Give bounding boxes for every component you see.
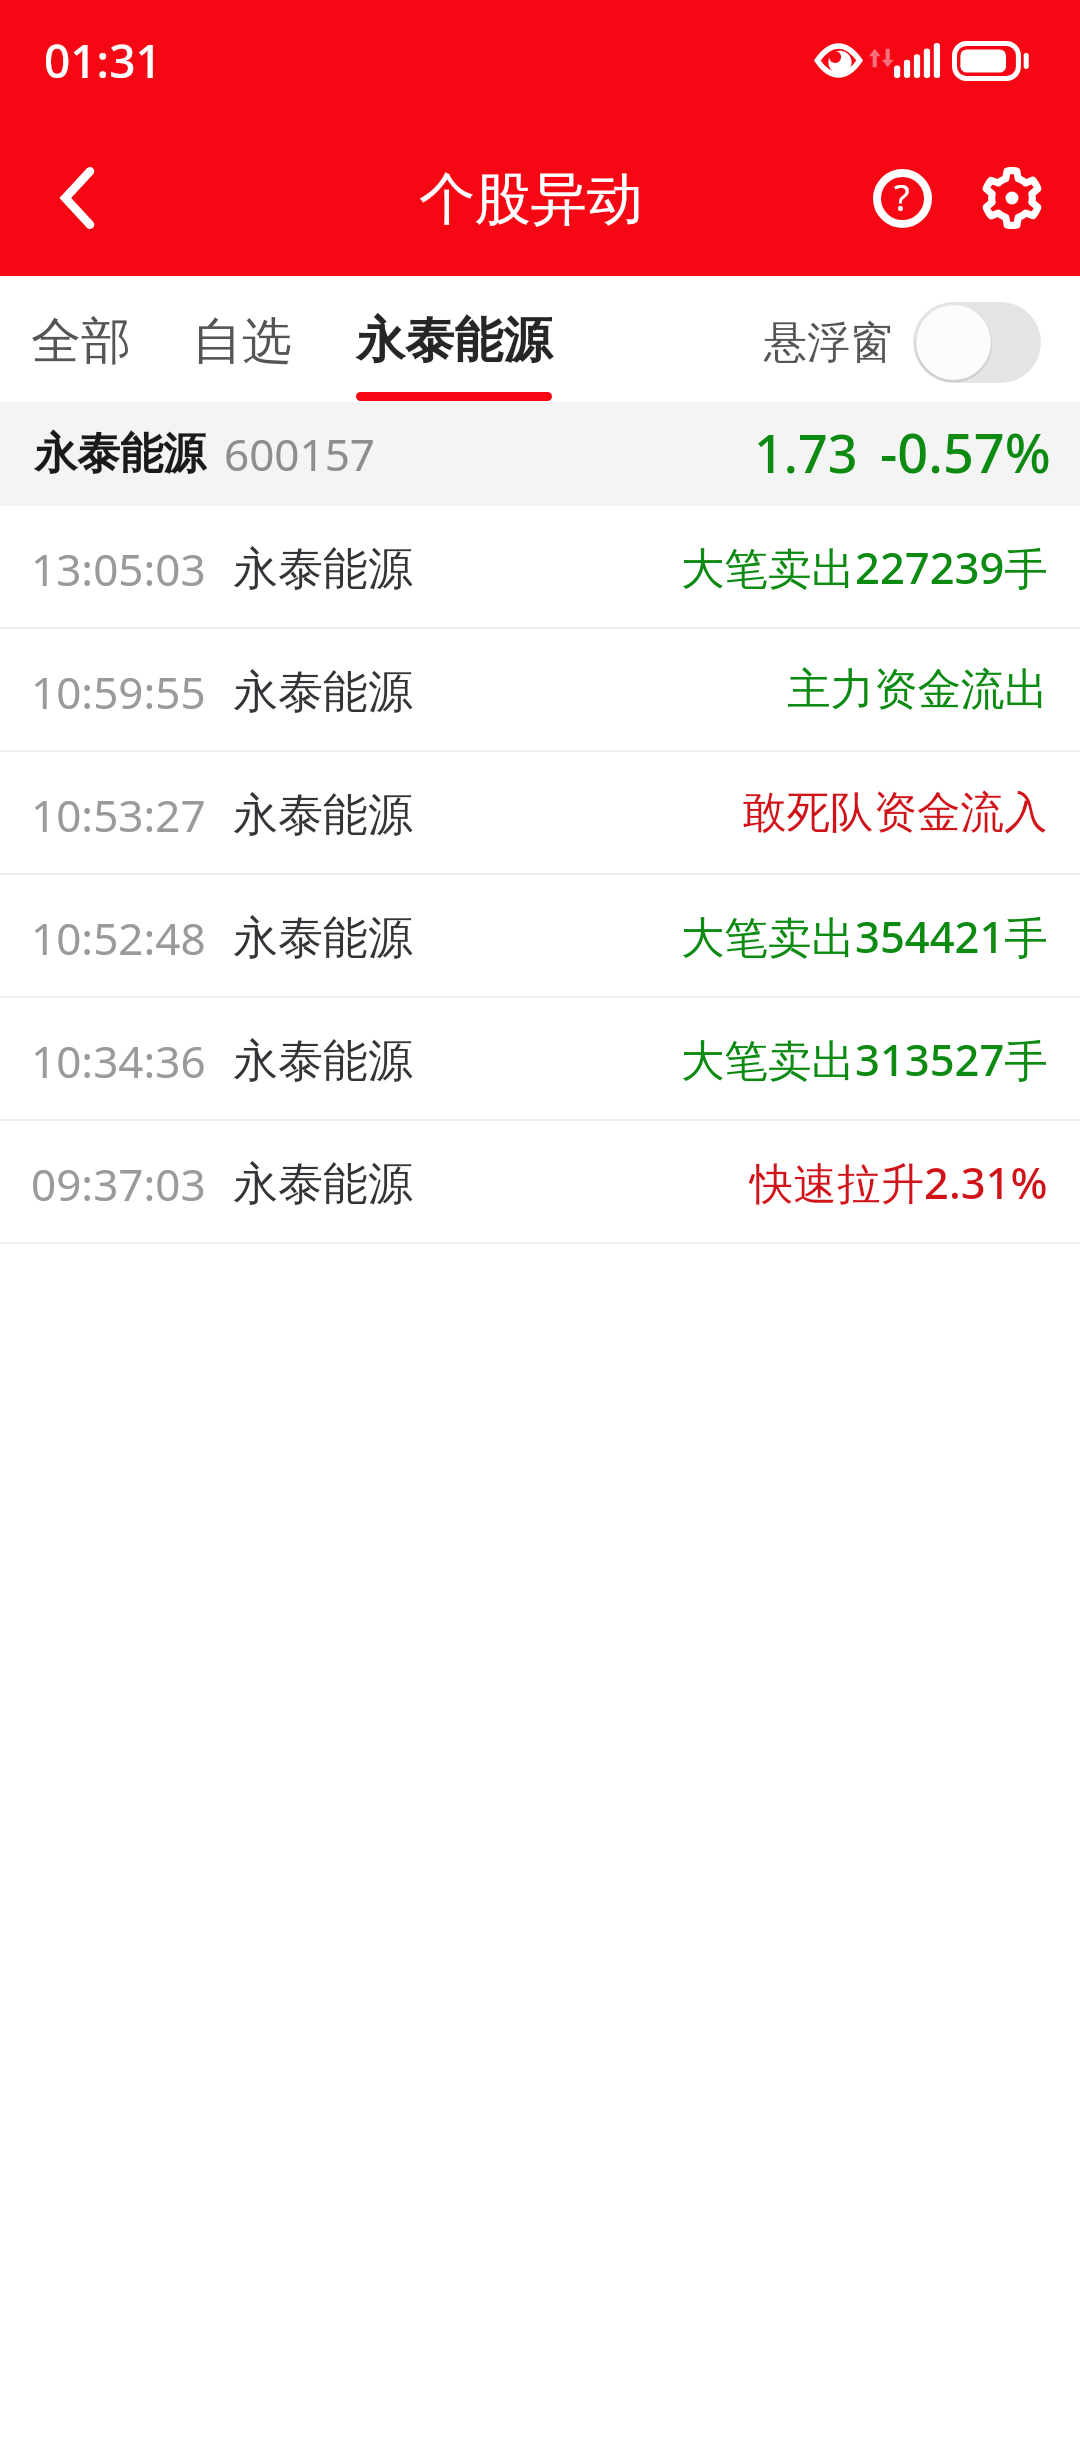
staticText: 快速拉升2.31% bbox=[750, 1152, 1048, 1211]
staticText: 永泰能源 bbox=[233, 1033, 413, 1090]
staticText: 敢死队资金流入 bbox=[743, 785, 1048, 840]
staticText: 大笔卖出354421手 bbox=[681, 906, 1048, 965]
staticText: 10:53:27 bbox=[31, 785, 206, 845]
button[interactable]: Back bbox=[0, 120, 158, 276]
staticText: 大笔卖出227239手 bbox=[681, 537, 1048, 596]
staticText: 1.73 bbox=[754, 417, 858, 488]
button[interactable]: 10:52:48 bbox=[0, 875, 1080, 996]
button[interactable]: 10:53:27 bbox=[0, 752, 1080, 873]
staticText: 永泰能源 bbox=[233, 541, 413, 598]
staticText: 主力资金流出 bbox=[787, 662, 1048, 717]
button[interactable]: 09:37:03 bbox=[0, 1121, 1080, 1242]
staticText: 09:37:03 bbox=[31, 1154, 206, 1214]
staticText: 10:34:36 bbox=[31, 1031, 206, 1091]
staticText: 自选 bbox=[192, 310, 292, 373]
button[interactable]: 全部 bbox=[31, 310, 131, 402]
button[interactable]: 10:59:55 bbox=[0, 629, 1080, 750]
staticText: 01:31 bbox=[44, 29, 162, 92]
staticText: 13:05:03 bbox=[31, 539, 206, 599]
staticText: 永泰能源 bbox=[34, 427, 206, 481]
button[interactable]: 13:05:03 bbox=[0, 506, 1080, 627]
staticText: 永泰能源 bbox=[233, 1156, 413, 1213]
staticText: -0.57% bbox=[880, 415, 1051, 489]
button[interactable]: Help bbox=[847, 120, 957, 276]
staticText: 全部 bbox=[31, 310, 131, 373]
button[interactable]: Floating window toggle bbox=[913, 302, 1041, 383]
staticText: 永泰能源 bbox=[356, 310, 552, 372]
staticText: 600157 bbox=[224, 424, 376, 484]
staticText: ? bbox=[894, 173, 910, 222]
staticText: 10:59:55 bbox=[31, 662, 206, 722]
staticText: 大笔卖出313527手 bbox=[681, 1029, 1048, 1088]
staticText: 永泰能源 bbox=[233, 910, 413, 967]
staticText: 永泰能源 bbox=[233, 787, 413, 844]
button[interactable]: 10:34:36 bbox=[0, 998, 1080, 1119]
staticText: 10:52:48 bbox=[31, 908, 206, 968]
button[interactable]: 永泰能源 bbox=[356, 310, 552, 401]
button[interactable]: 永泰能源 bbox=[0, 402, 1080, 506]
button[interactable]: Settings bbox=[957, 120, 1067, 276]
button[interactable]: 自选 bbox=[192, 310, 292, 402]
staticText: 悬浮窗 bbox=[764, 316, 893, 370]
staticText: 个股异动 bbox=[419, 164, 643, 235]
staticText: 永泰能源 bbox=[233, 664, 413, 721]
